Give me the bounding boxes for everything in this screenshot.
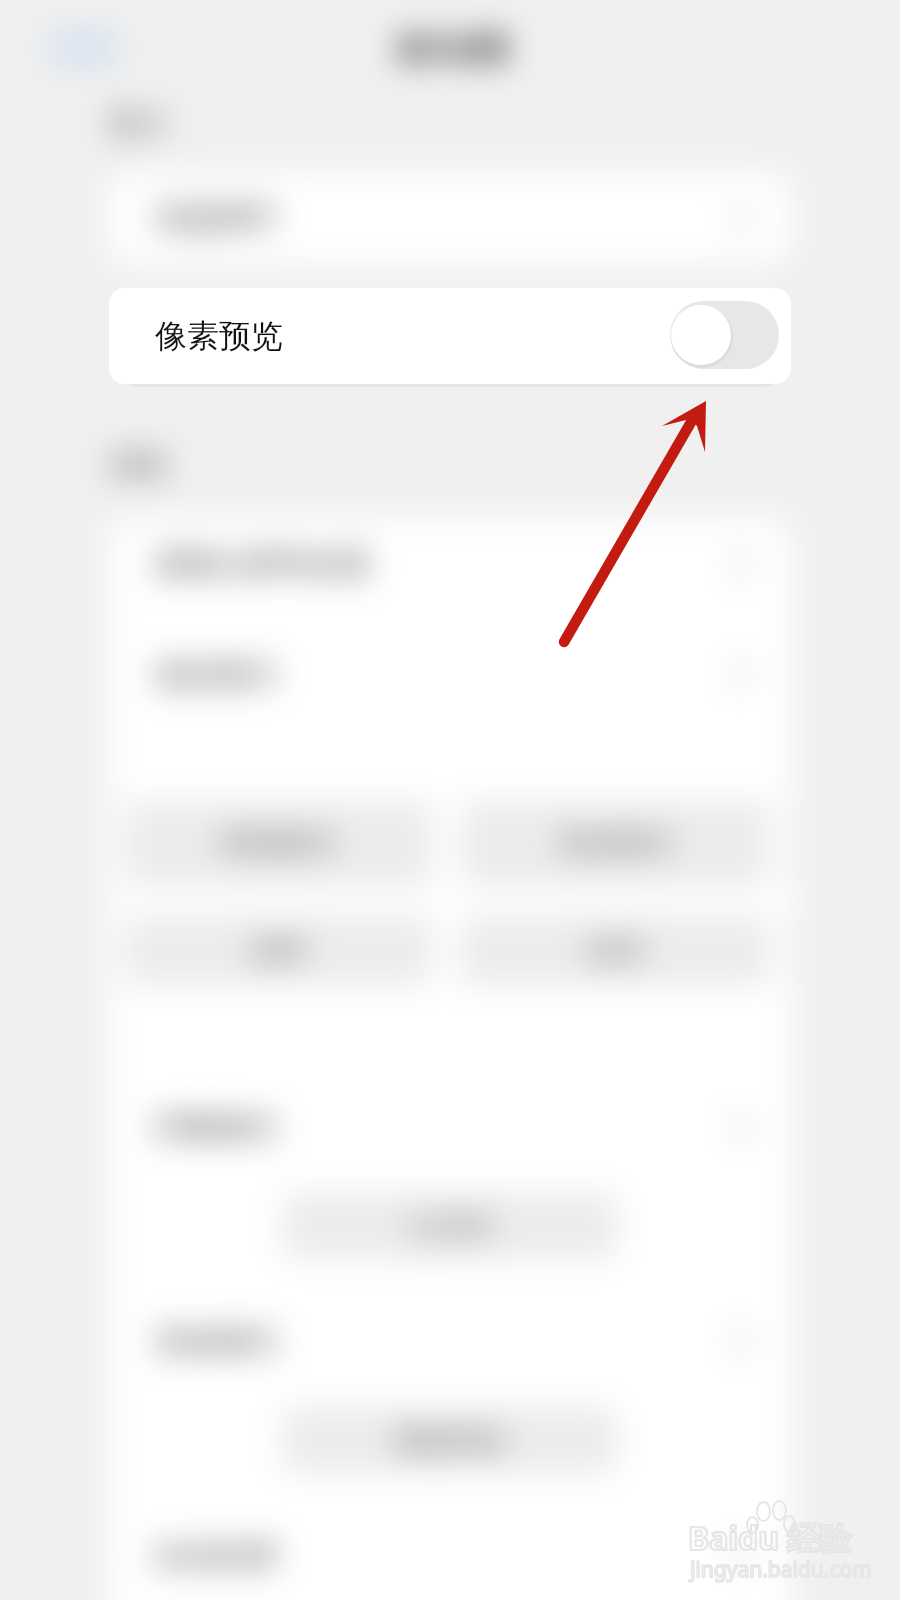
staticText: 屏幕 <box>108 447 168 485</box>
staticText: 标准 <box>588 933 644 968</box>
button[interactable]: 自动息屏 <box>109 1505 791 1600</box>
button[interactable]: 亮度调节 <box>109 172 791 264</box>
staticText: 鲜艳模式 <box>221 825 337 862</box>
button[interactable]: 推荐 <box>124 915 433 986</box>
button[interactable]: 像素预览 <box>109 288 791 384</box>
button[interactable]: 护眼模式 <box>109 1077 791 1177</box>
button[interactable]: 鲜艳模式 <box>124 800 433 887</box>
staticText: 亮度调节 <box>154 199 278 238</box>
staticText: 已关闭 <box>408 1209 492 1244</box>
button[interactable]: 标准 <box>460 915 771 986</box>
staticText: Baidu 经验 <box>688 1516 852 1560</box>
button[interactable]: 深色模式 <box>109 1291 791 1391</box>
staticText: jingyan.baidu.com <box>690 1555 872 1584</box>
staticText: 推荐 <box>251 933 307 968</box>
staticText: 色彩显示 <box>154 655 278 694</box>
staticText: 深色模式 <box>154 1322 278 1361</box>
button[interactable]: 原色模式 <box>460 800 771 887</box>
staticText: 显示设置 <box>396 32 508 67</box>
button[interactable]: 已关闭 <box>282 1192 618 1260</box>
button[interactable]: 屏幕分辨率设置 <box>109 518 791 610</box>
staticText: 自动息屏 <box>154 1536 278 1575</box>
button[interactable]: Toggle pixel preview <box>670 301 779 369</box>
button[interactable]: 色彩显示 <box>109 628 791 720</box>
staticText: 护眼模式 <box>154 1108 278 1147</box>
staticText: 显示 <box>108 105 168 143</box>
staticText: 像素预览 <box>155 316 283 356</box>
staticText: 跟随系统 <box>394 1423 506 1458</box>
staticText: 屏幕分辨率设置 <box>154 545 371 584</box>
button[interactable]: 跟随系统 <box>282 1406 618 1474</box>
staticText: 原色模式 <box>558 825 674 862</box>
